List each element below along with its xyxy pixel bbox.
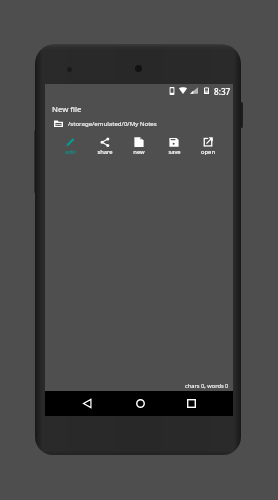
staticText: open	[201, 148, 215, 156]
button[interactable]: save	[161, 137, 187, 156]
button[interactable]: edit	[57, 137, 83, 156]
button[interactable]: share	[92, 137, 118, 156]
button[interactable]: Home	[129, 391, 151, 416]
staticText: new	[133, 148, 145, 156]
staticText: /storage/emulated/0/My Notes	[68, 119, 157, 127]
button[interactable]: Recents	[180, 391, 202, 416]
staticText: save	[168, 148, 181, 156]
staticText: share	[97, 148, 113, 156]
staticText: New file	[52, 104, 82, 115]
staticText: chars 0, words 0	[185, 382, 229, 390]
staticText: 8:37	[214, 86, 231, 97]
staticText: edit	[65, 148, 76, 156]
button[interactable]: Back	[76, 391, 98, 416]
button[interactable]: new	[126, 137, 152, 156]
button[interactable]: open	[195, 137, 221, 156]
